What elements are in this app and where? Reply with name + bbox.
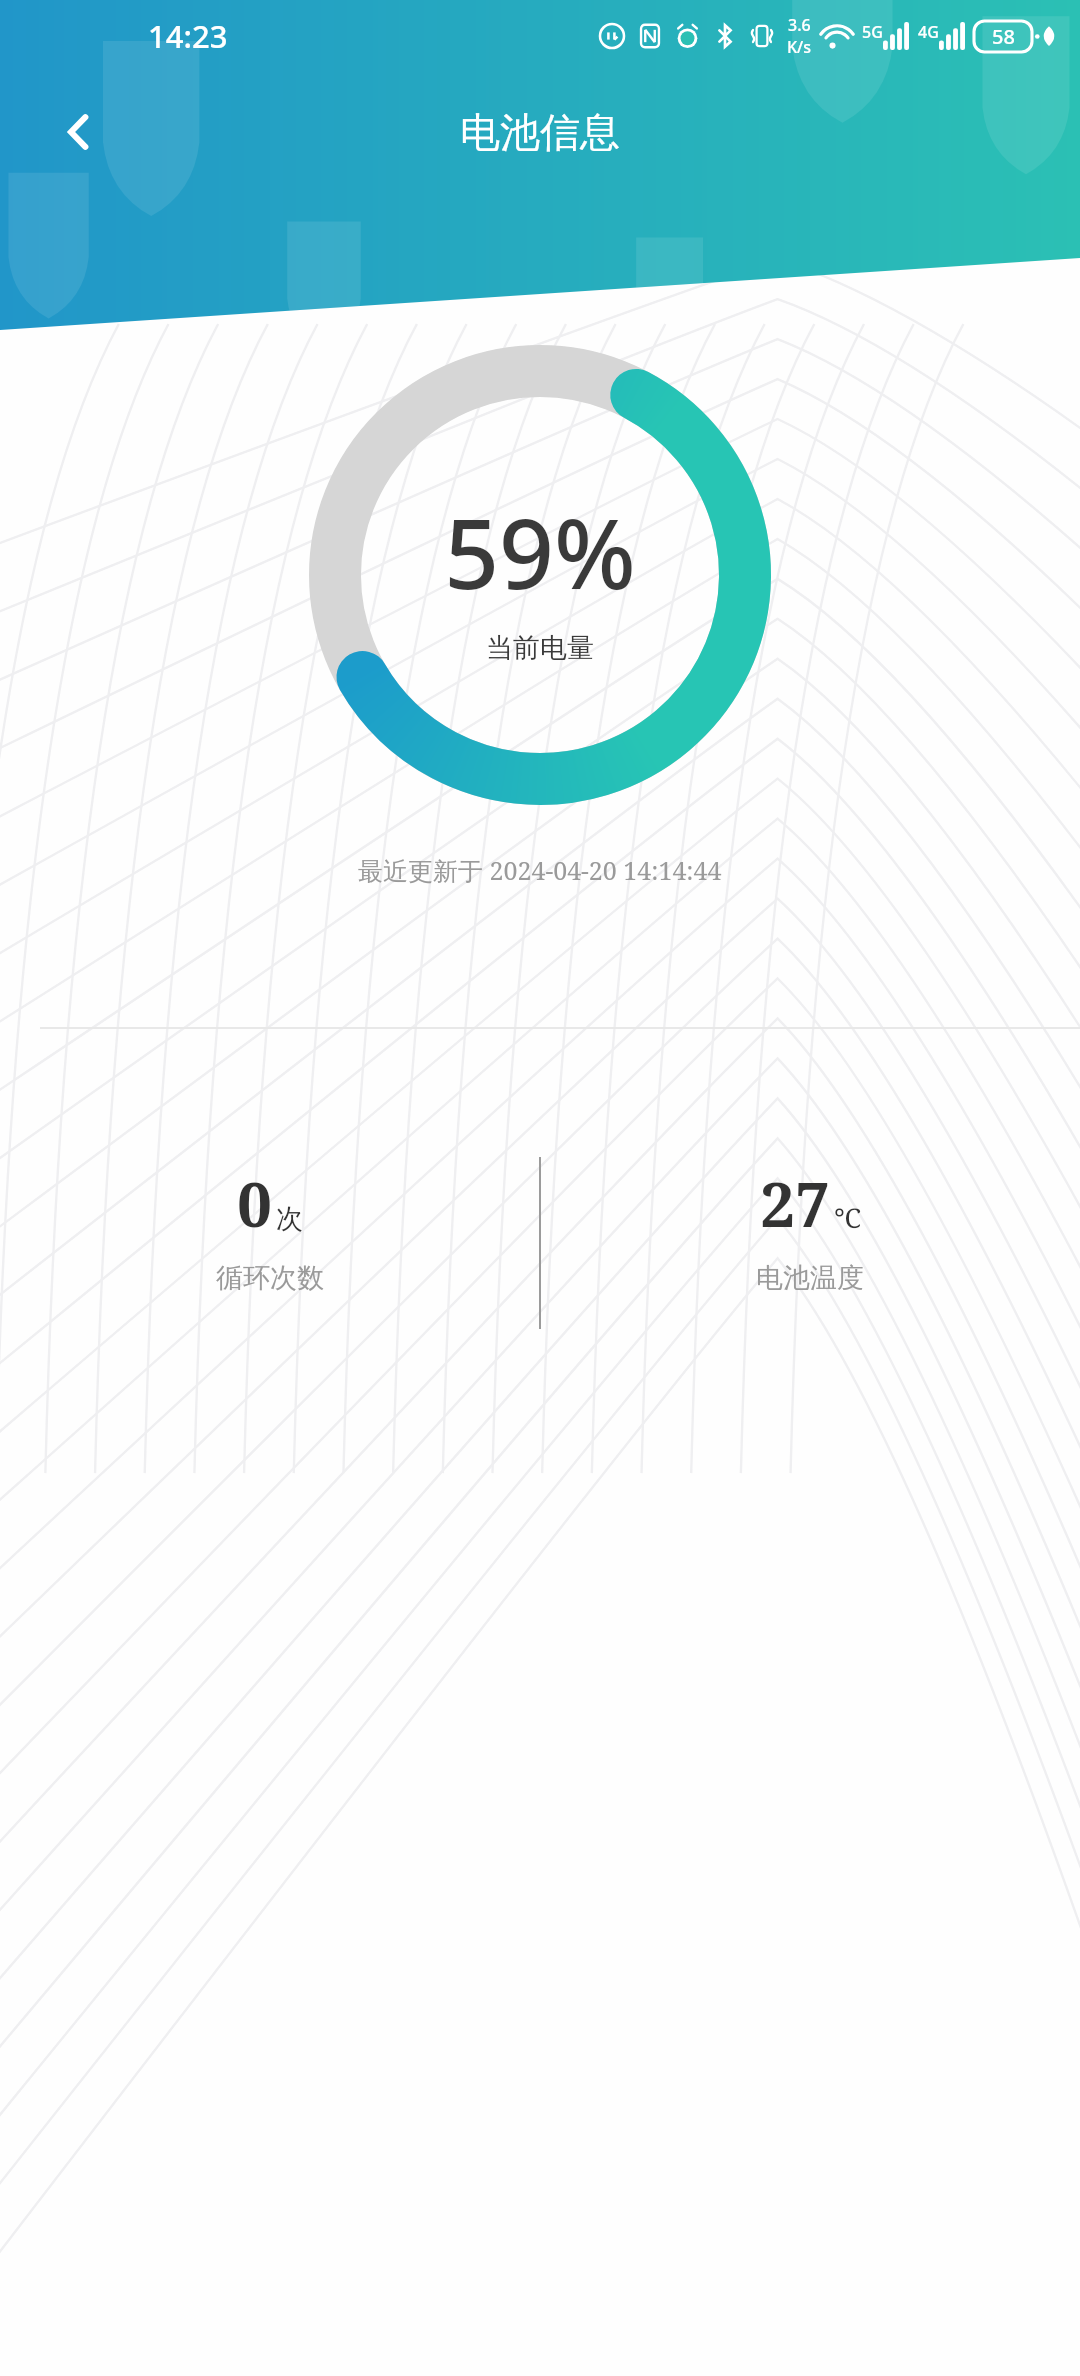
staticText: 4G [918,21,939,43]
staticText: 0 [237,1161,273,1245]
staticText: 循环次数 [216,1261,324,1295]
staticText: 3.6 [788,14,811,36]
staticText: 次 [276,1202,303,1236]
staticText: 最近更新于 2024-04-20 14:14:44 [358,853,722,887]
button[interactable]: 0 [0,1133,540,1295]
staticText: ℃ [834,1199,861,1236]
staticText: 14:23 [148,15,228,57]
staticText: 当前电量 [486,631,594,665]
button[interactable]: 27 [540,1133,1080,1295]
staticText: 5G [862,21,883,43]
staticText: 58 [992,23,1015,50]
staticText: K/s [787,36,812,58]
button[interactable]: Back [46,99,112,165]
staticText: 电池温度 [756,1261,864,1295]
staticText: 电池信息 [460,107,620,157]
staticText: 59% [444,486,636,617]
staticText: 27 [760,1161,831,1245]
